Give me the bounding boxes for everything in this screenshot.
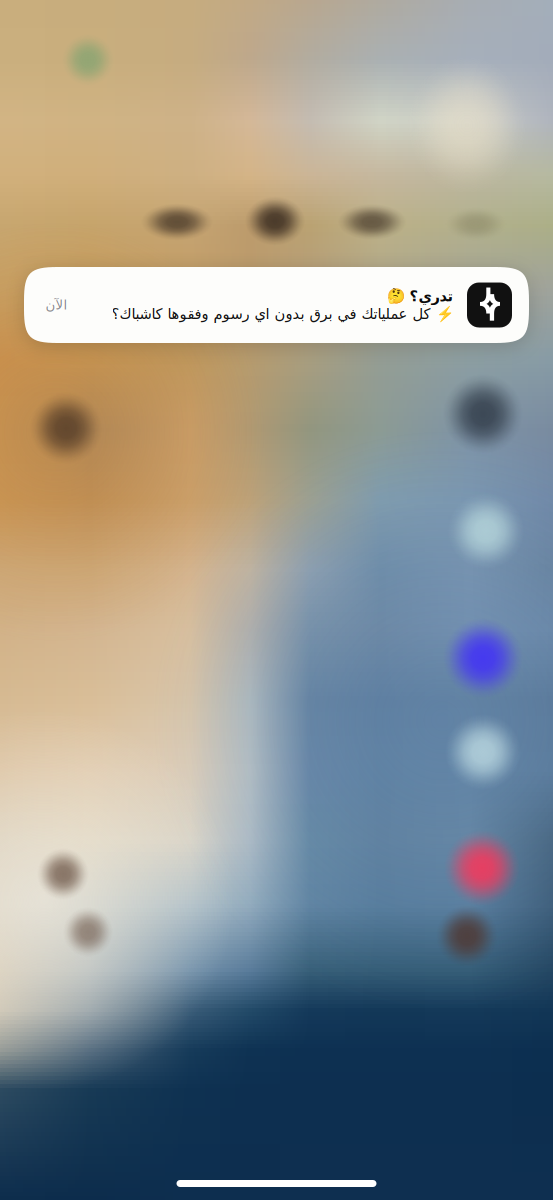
staticText: الآن: [45, 297, 67, 312]
button[interactable]: الآن: [24, 267, 529, 343]
staticText: تدري؟ 🤔: [386, 288, 453, 304]
staticText: ⚡ كل عملياتك في برق بدون اي رسوم وفقوها …: [111, 305, 453, 322]
